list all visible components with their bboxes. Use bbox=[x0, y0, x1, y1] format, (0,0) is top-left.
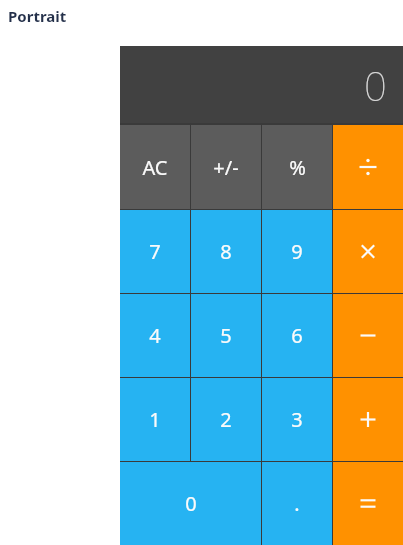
button[interactable]: 2 bbox=[191, 378, 261, 461]
button[interactable]: Divide bbox=[333, 125, 403, 209]
button[interactable]: 4 bbox=[120, 294, 190, 377]
staticText: . bbox=[294, 490, 300, 517]
staticText: 0 bbox=[185, 490, 197, 517]
button[interactable]: 0 bbox=[120, 462, 261, 545]
button[interactable]: Minus bbox=[333, 294, 403, 377]
button[interactable]: Equals bbox=[333, 462, 403, 545]
button[interactable]: 3 bbox=[262, 378, 332, 461]
staticText: 0 bbox=[364, 58, 387, 112]
button[interactable]: Multiply bbox=[333, 210, 403, 293]
staticText: 8 bbox=[220, 238, 232, 265]
button[interactable]: 1 bbox=[120, 378, 190, 461]
staticText: 1 bbox=[149, 406, 161, 433]
staticText: 3 bbox=[291, 406, 303, 433]
staticText: % bbox=[289, 154, 306, 181]
button[interactable]: 7 bbox=[120, 210, 190, 293]
button[interactable]: Plus bbox=[333, 378, 403, 461]
button[interactable]: +/- bbox=[191, 125, 261, 209]
staticText: 2 bbox=[220, 406, 232, 433]
button[interactable]: % bbox=[262, 125, 332, 209]
staticText: 9 bbox=[291, 238, 303, 265]
button[interactable]: 9 bbox=[262, 210, 332, 293]
button[interactable]: 5 bbox=[191, 294, 261, 377]
button[interactable]: AC bbox=[120, 125, 190, 209]
staticText: AC bbox=[142, 154, 168, 181]
staticText: 5 bbox=[220, 322, 232, 349]
button[interactable]: 8 bbox=[191, 210, 261, 293]
staticText: 7 bbox=[149, 238, 161, 265]
staticText: +/- bbox=[213, 154, 239, 181]
staticText: Portrait bbox=[8, 6, 67, 26]
button[interactable]: . bbox=[262, 462, 332, 545]
staticText: 4 bbox=[149, 322, 161, 349]
staticText: 6 bbox=[291, 322, 303, 349]
button[interactable]: 6 bbox=[262, 294, 332, 377]
